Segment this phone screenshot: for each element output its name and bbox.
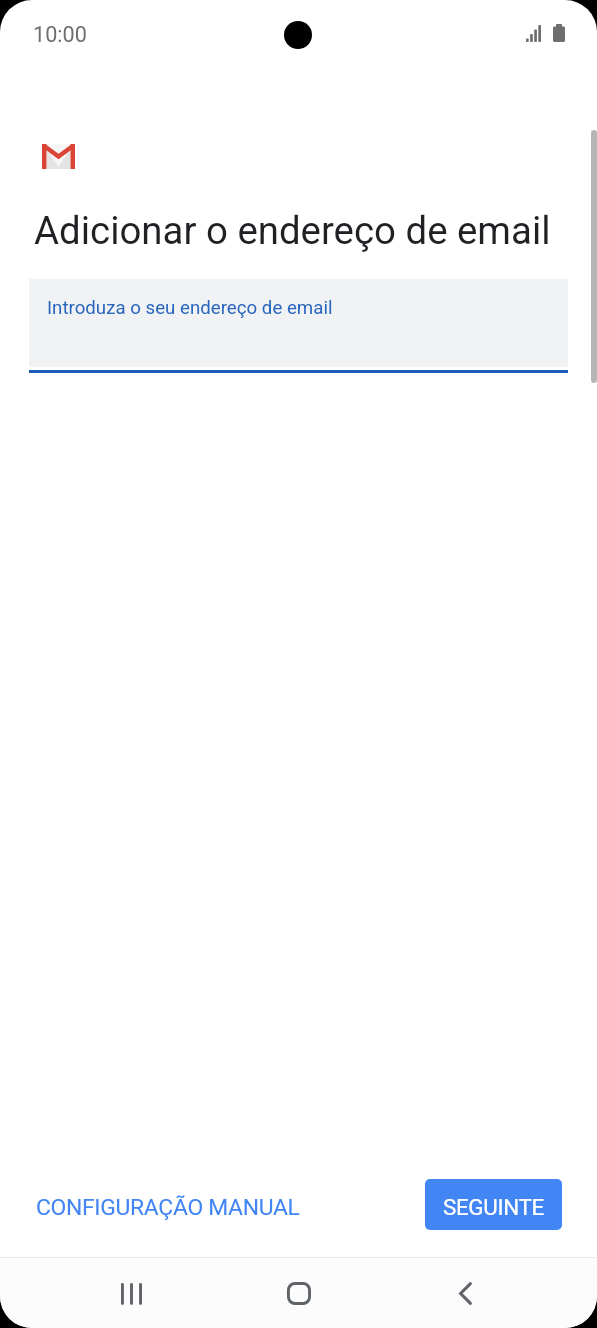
staticText: Introduza o seu endereço de email: [47, 297, 333, 319]
staticText: 10:00: [33, 22, 87, 47]
button[interactable]: Home: [278, 1273, 319, 1314]
button[interactable]: Back: [445, 1273, 486, 1314]
button[interactable]: CONFIGURAÇÃO MANUAL: [24, 1186, 312, 1229]
button[interactable]: SEGUINTE: [425, 1179, 562, 1230]
button[interactable]: Recents: [111, 1273, 152, 1314]
staticText: CONFIGURAÇÃO MANUAL: [36, 1194, 300, 1221]
staticText: SEGUINTE: [443, 1194, 544, 1220]
staticText: Adicionar o endereço de email: [34, 208, 551, 253]
button[interactable]: Introduza o seu endereço de email: [29, 279, 568, 373]
